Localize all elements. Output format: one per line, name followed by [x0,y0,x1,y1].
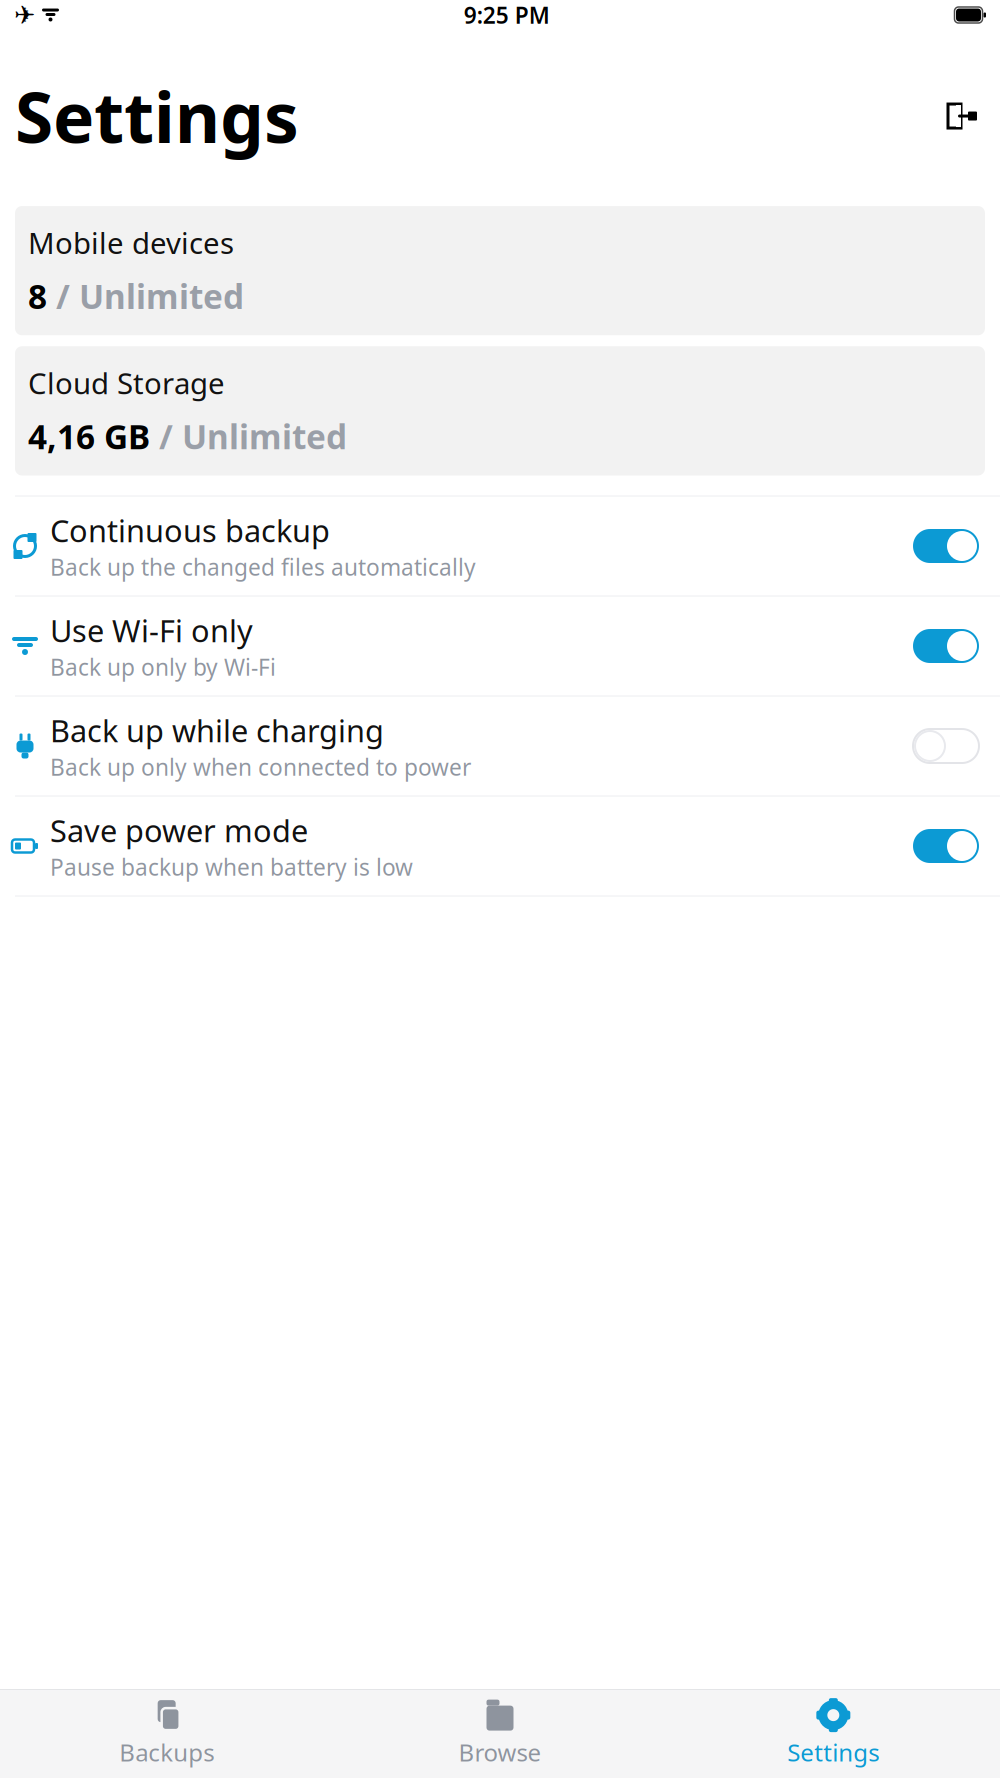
staticText: Back up only when connected to power [50,752,471,782]
staticText: / [47,274,79,318]
staticText: Pause backup when battery is low [50,852,413,882]
staticText: Browse [458,1736,541,1768]
button[interactable]: Sign out [939,95,985,137]
staticText: / [150,414,182,458]
staticText: Settings [15,70,299,162]
staticText: Save power mode [50,810,308,851]
button[interactable]: Backups [0,1690,333,1778]
staticText: Use Wi-Fi only [50,610,253,651]
staticText: Continuous backup [50,510,330,551]
staticText: Back up while charging [50,710,384,751]
button[interactable]: Settings [667,1690,1000,1778]
staticText: 9:25 PM [464,0,550,30]
staticText: Backups [119,1736,214,1768]
button[interactable]: Continuous backup [0,496,1000,595]
staticText: Back up only by Wi-Fi [50,652,276,682]
button[interactable]: Save power mode [0,796,1000,895]
staticText: ✈ [14,1,35,29]
button[interactable]: Back up while charging [0,696,1000,795]
button[interactable]: Browse [333,1690,667,1778]
staticText: Unlimited [182,414,347,458]
button[interactable]: Use Wi-Fi only [0,596,1000,695]
staticText: Settings [787,1736,879,1768]
staticText: Mobile devices [28,223,234,262]
staticText: 4,16 GB [28,414,150,458]
staticText: 8 [28,274,47,318]
staticText: Cloud Storage [28,363,225,402]
staticText: Unlimited [79,274,244,318]
staticText: Back up the changed files automatically [50,552,476,582]
